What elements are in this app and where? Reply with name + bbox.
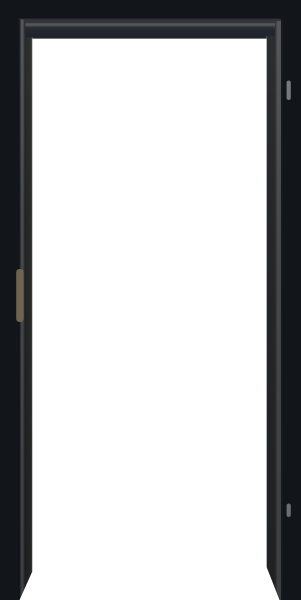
button[interactable]: Open doorway bbox=[0, 0, 301, 600]
